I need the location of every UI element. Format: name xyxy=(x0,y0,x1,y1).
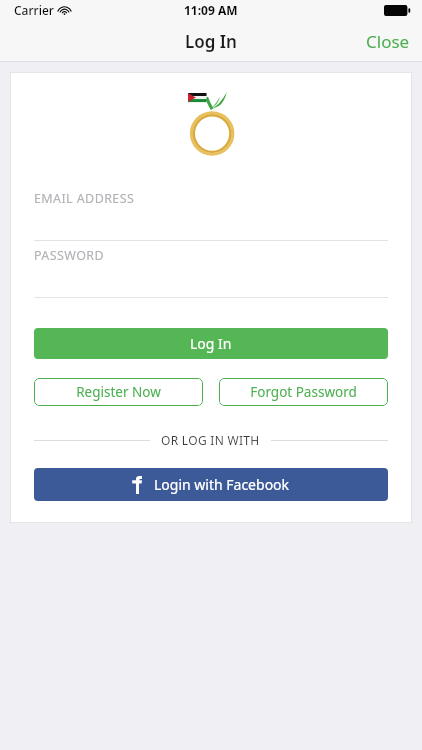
staticText: Log In xyxy=(190,334,232,353)
button[interactable]: Forgot Password xyxy=(219,378,388,406)
staticText: PASSWORD xyxy=(34,247,105,264)
staticText: OR LOG IN WITH xyxy=(161,432,260,448)
staticText: Login with Facebook xyxy=(154,475,290,494)
button[interactable]: Log In xyxy=(34,328,388,359)
staticText: Log In xyxy=(185,30,237,53)
button[interactable]: PASSWORD xyxy=(10,241,412,297)
staticText: 11:09 AM xyxy=(184,2,238,18)
staticText: Close xyxy=(366,30,410,53)
button[interactable]: Register Now xyxy=(34,378,203,406)
button[interactable]: Login with Facebook xyxy=(34,468,388,501)
button[interactable]: Close xyxy=(354,22,422,61)
staticText: Forgot Password xyxy=(250,383,357,401)
staticText: Carrier xyxy=(14,2,54,18)
staticText: Register Now xyxy=(76,383,161,401)
button[interactable]: EMAIL ADDRESS xyxy=(10,184,412,240)
staticText: EMAIL ADDRESS xyxy=(34,190,135,207)
